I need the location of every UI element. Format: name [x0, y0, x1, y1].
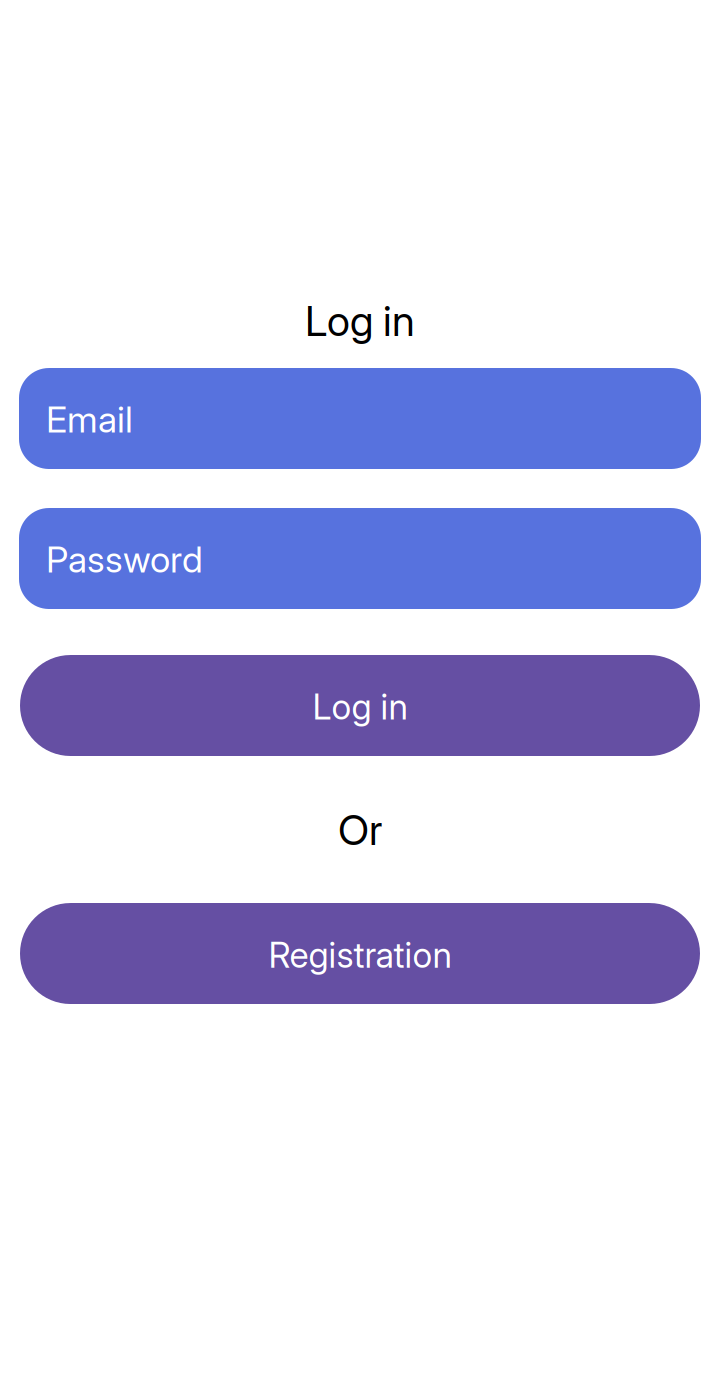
staticText: Log in	[305, 296, 415, 346]
staticText: Registration	[268, 934, 451, 976]
button[interactable]: Log in	[20, 655, 700, 756]
button[interactable]: Email	[19, 368, 701, 469]
button[interactable]: Registration	[20, 903, 700, 1004]
staticText: Password	[46, 538, 203, 581]
button[interactable]: Password	[19, 508, 701, 609]
staticText: Email	[46, 398, 133, 441]
staticText: Or	[338, 805, 382, 855]
staticText: Log in	[312, 686, 407, 728]
